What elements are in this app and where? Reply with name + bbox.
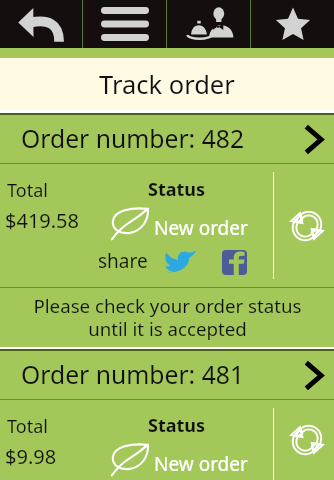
button[interactable]: Refresh order status xyxy=(280,164,334,287)
staticText: Please check your order status until it … xyxy=(33,293,302,342)
button[interactable]: Menu xyxy=(83,0,166,48)
staticText: Total xyxy=(7,178,48,203)
button[interactable]: Share on Facebook xyxy=(222,250,247,275)
button[interactable]: Refresh order status xyxy=(280,400,334,480)
staticText: Status xyxy=(148,413,206,438)
button[interactable]: Order number: 482 xyxy=(0,115,334,163)
staticText: New order xyxy=(154,451,248,477)
staticText: Total xyxy=(7,414,48,439)
staticText: Order number: 481 xyxy=(21,358,245,392)
button[interactable]: Order number: 481 xyxy=(0,351,334,399)
button[interactable]: Favorites xyxy=(251,0,334,48)
button[interactable]: Share on Twitter xyxy=(165,250,196,276)
staticText: New order xyxy=(154,215,248,241)
button[interactable]: Back xyxy=(0,0,82,48)
staticText: share xyxy=(98,248,148,274)
staticText: Track order xyxy=(99,67,235,102)
staticText: Order number: 482 xyxy=(21,122,245,156)
staticText: $419.58 xyxy=(5,207,79,234)
staticText: Status xyxy=(148,177,206,202)
staticText: $9.98 xyxy=(5,443,57,470)
button[interactable]: Call waiter xyxy=(167,0,250,48)
